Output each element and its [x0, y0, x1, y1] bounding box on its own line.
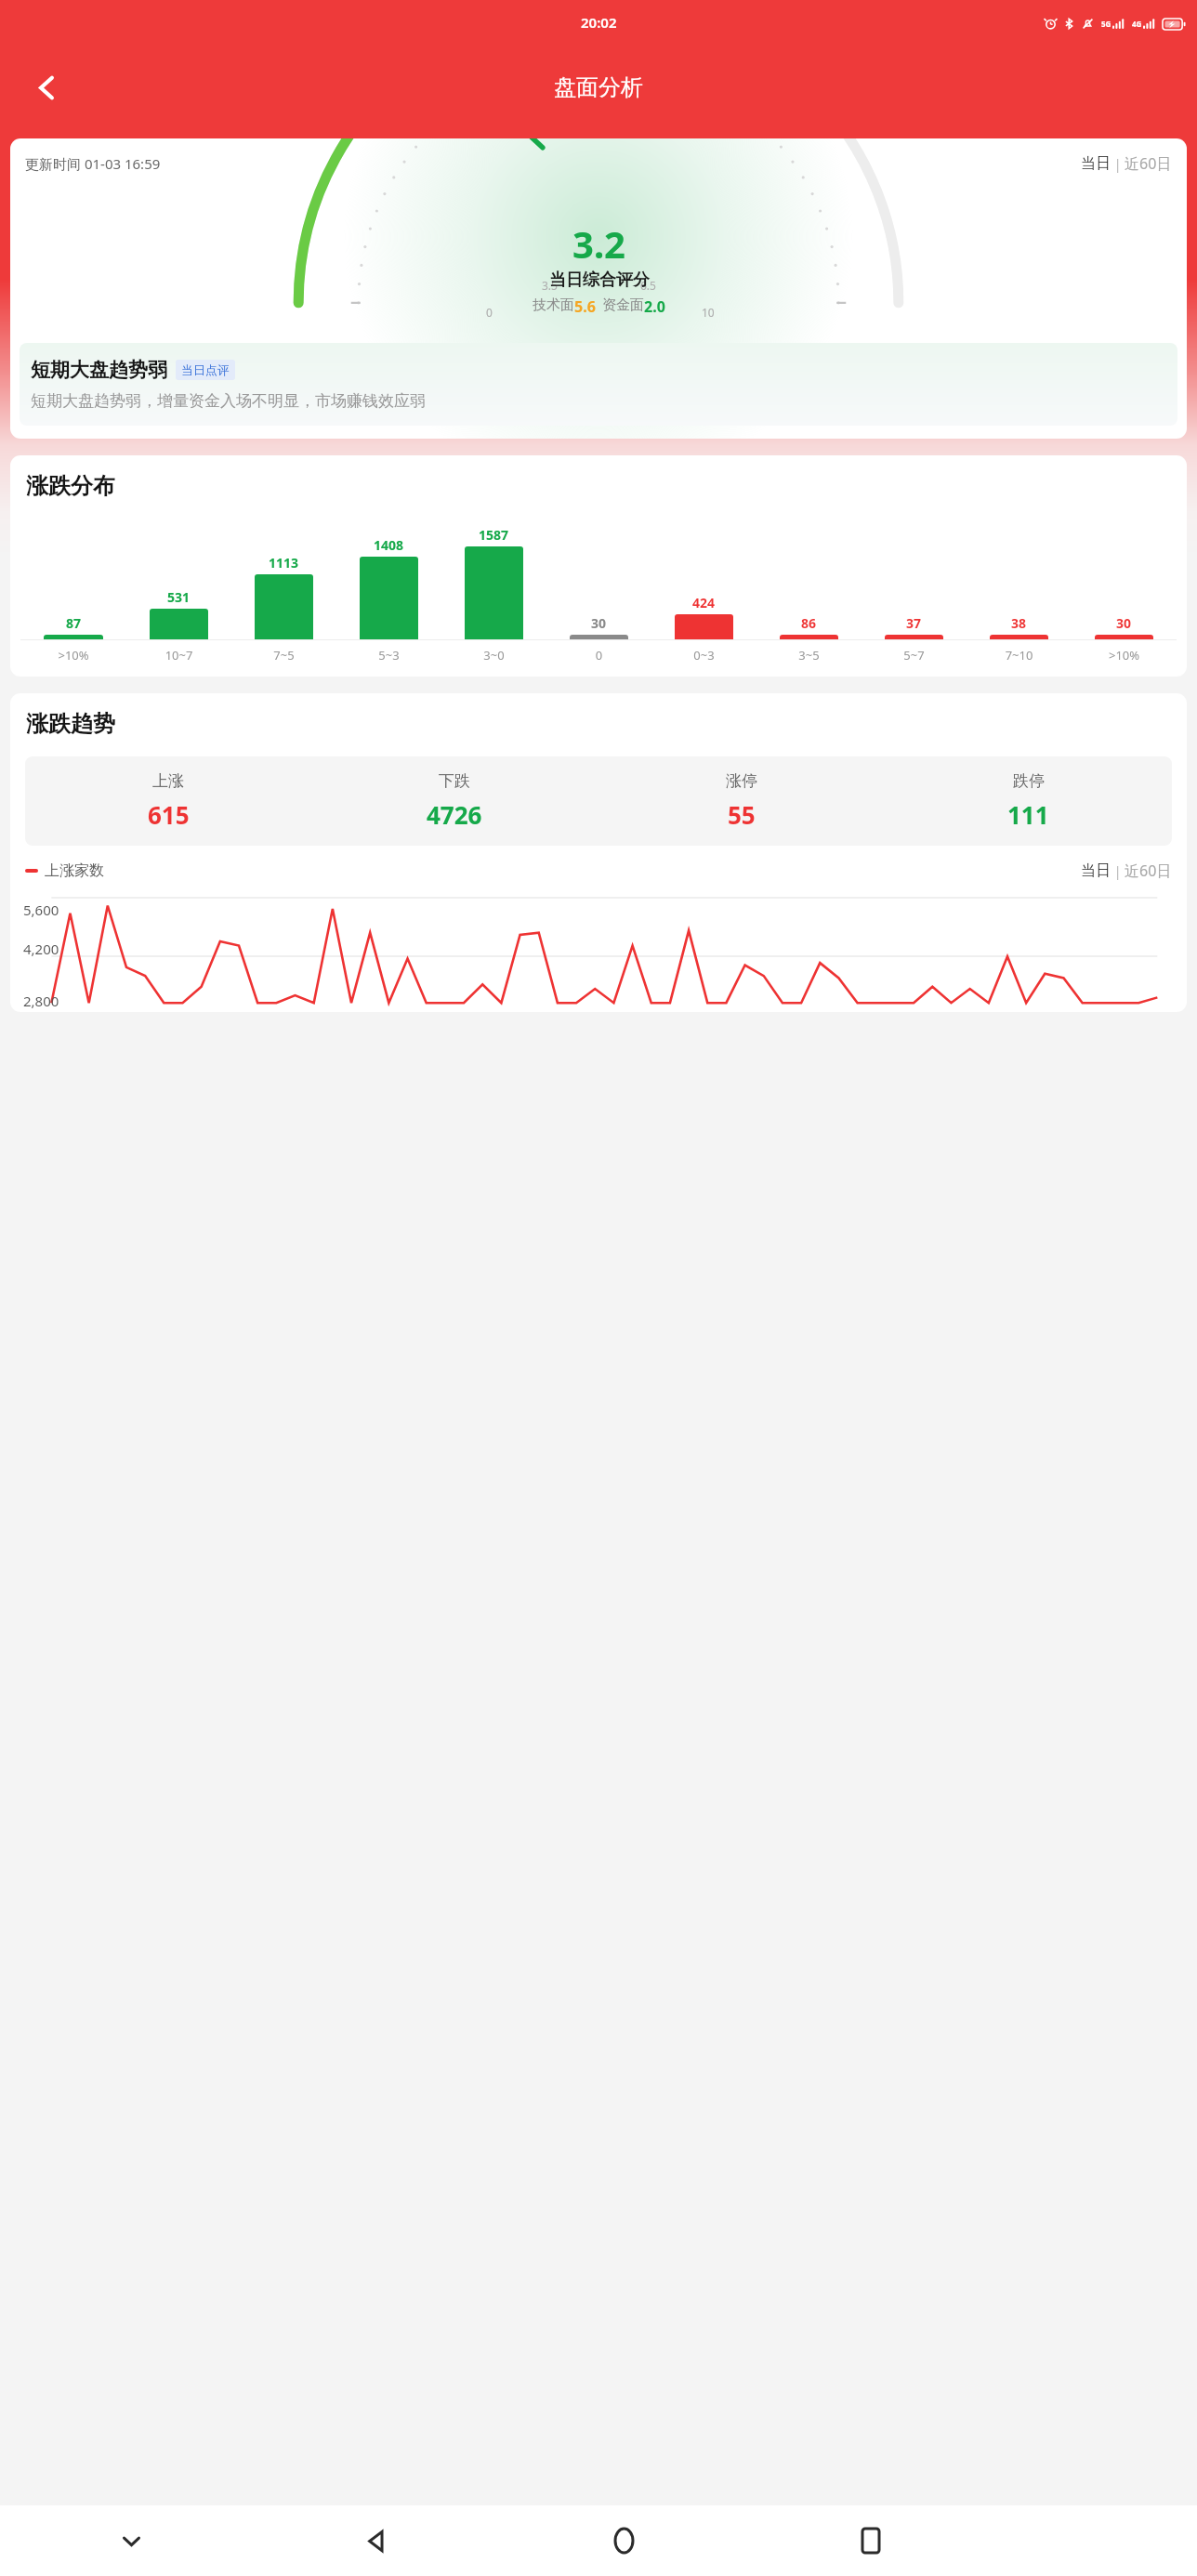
staticText: 10~7 — [126, 647, 231, 664]
staticText: 5,600 — [23, 900, 59, 919]
staticText: 10 — [702, 305, 715, 320]
staticText: 531 — [167, 588, 191, 606]
button[interactable]: 上涨 — [25, 771, 311, 831]
staticText: 3~5 — [756, 647, 862, 664]
button[interactable]: 跌停 — [885, 771, 1172, 831]
staticText: 技术面 — [533, 296, 574, 314]
staticText: 上涨家数 — [45, 861, 104, 880]
staticText: 下跌 — [439, 771, 470, 791]
staticText: 2.0 — [644, 296, 665, 317]
staticText: 1408 — [374, 536, 404, 554]
staticText: 615 — [148, 798, 190, 831]
staticText: 资金面 — [602, 296, 644, 314]
button[interactable]: Back — [349, 2514, 403, 2568]
staticText: >10% — [20, 647, 126, 664]
staticText: | — [1111, 862, 1125, 880]
staticText: 7~5 — [231, 647, 336, 664]
staticText: 3.5 — [542, 278, 558, 293]
staticText: 38 — [1011, 614, 1027, 632]
staticText: 当日 — [1081, 154, 1111, 173]
staticText: 4,200 — [23, 940, 59, 958]
button[interactable]: Back — [20, 61, 72, 113]
staticText: 86 — [801, 614, 817, 632]
staticText: 3.2 — [572, 218, 625, 269]
staticText: 盘面分析 — [554, 73, 643, 101]
staticText: 1113 — [269, 554, 299, 572]
staticText: 87 — [66, 614, 82, 632]
staticText: | — [1111, 155, 1125, 173]
button[interactable]: Hide keyboard — [106, 2516, 156, 2566]
staticText: 近60日 — [1125, 861, 1172, 881]
staticText: 短期大盘趋势弱 — [31, 358, 167, 382]
staticText: 当日点评 — [181, 362, 230, 377]
staticText: 短期大盘趋势弱，增量资金入场不明显，市场赚钱效应弱 — [31, 391, 426, 411]
staticText: 涨停 — [726, 771, 757, 791]
staticText: 6.5 — [640, 278, 656, 293]
button[interactable]: 当日 — [1081, 154, 1111, 173]
staticText: 当日综合评分 — [549, 269, 650, 291]
staticText: 更新时间 01-03 16:59 — [25, 154, 161, 173]
button[interactable]: 近60日 — [1125, 861, 1172, 881]
staticText: 当日 — [1081, 861, 1111, 880]
staticText: 5.6 — [574, 296, 596, 317]
staticText: 30 — [591, 614, 607, 632]
staticText: 37 — [906, 614, 922, 632]
staticText: 424 — [692, 594, 716, 611]
staticText: 0 — [486, 305, 493, 320]
staticText: 0~3 — [651, 647, 756, 664]
staticText: 涨跌分布 — [26, 472, 115, 500]
button[interactable]: Recents — [844, 2514, 898, 2568]
staticText: 1587 — [479, 526, 509, 544]
staticText: 5~7 — [862, 647, 967, 664]
staticText: 上涨 — [152, 771, 184, 791]
staticText: 5~3 — [336, 647, 441, 664]
staticText: 0 — [546, 647, 651, 664]
staticText: 跌停 — [1013, 771, 1045, 791]
staticText: 7~10 — [967, 647, 1072, 664]
staticText: 2,800 — [23, 992, 59, 1010]
button[interactable]: 涨停 — [598, 771, 885, 831]
staticText: 近60日 — [1125, 153, 1172, 174]
staticText: 20:02 — [581, 13, 617, 32]
staticText: 55 — [728, 798, 756, 831]
button[interactable]: 短期大盘趋势弱 — [31, 358, 1166, 411]
button[interactable]: 下跌 — [311, 771, 598, 831]
staticText: 5G — [1101, 19, 1111, 29]
staticText: >10% — [1072, 647, 1177, 664]
staticText: 涨跌趋势 — [26, 710, 115, 738]
button[interactable]: 近60日 — [1125, 153, 1172, 174]
button[interactable]: Home — [597, 2514, 651, 2568]
button[interactable]: 当日 — [1081, 861, 1111, 880]
staticText: 111 — [1007, 798, 1049, 831]
staticText: 4726 — [427, 798, 482, 831]
staticText: 4G — [1132, 19, 1142, 29]
staticText: 3~0 — [441, 647, 546, 664]
staticText: 30 — [1116, 614, 1132, 632]
